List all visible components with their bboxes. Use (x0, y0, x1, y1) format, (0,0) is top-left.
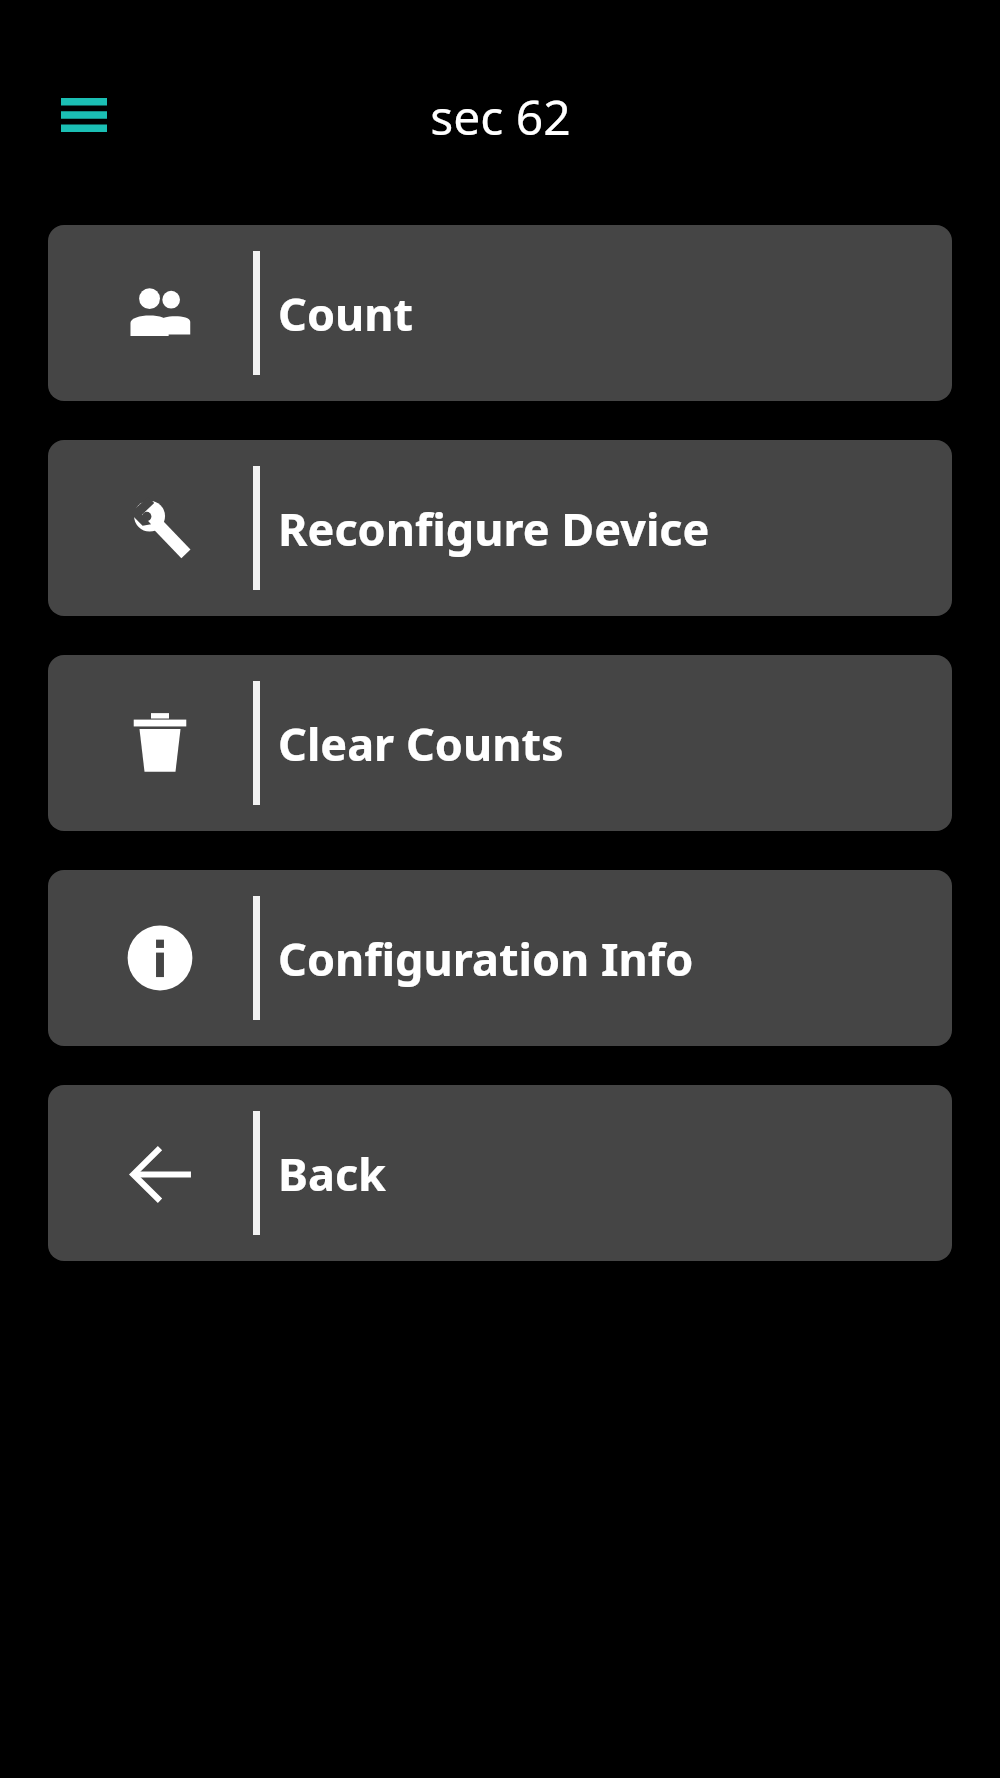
button[interactable]: Back (48, 1085, 952, 1261)
button[interactable]: Configuration Info (48, 870, 952, 1046)
button[interactable]: Clear Counts (48, 655, 952, 831)
button[interactable]: Count (48, 225, 952, 401)
staticText: Clear Counts (278, 713, 564, 774)
staticText: Back (278, 1143, 387, 1204)
staticText: Configuration Info (278, 928, 694, 989)
button[interactable]: Reconfigure Device (48, 440, 952, 616)
staticText: sec 62 (430, 84, 571, 149)
button[interactable]: Open navigation menu (44, 82, 124, 148)
staticText: Count (278, 283, 414, 344)
staticText: Reconfigure Device (278, 498, 710, 559)
